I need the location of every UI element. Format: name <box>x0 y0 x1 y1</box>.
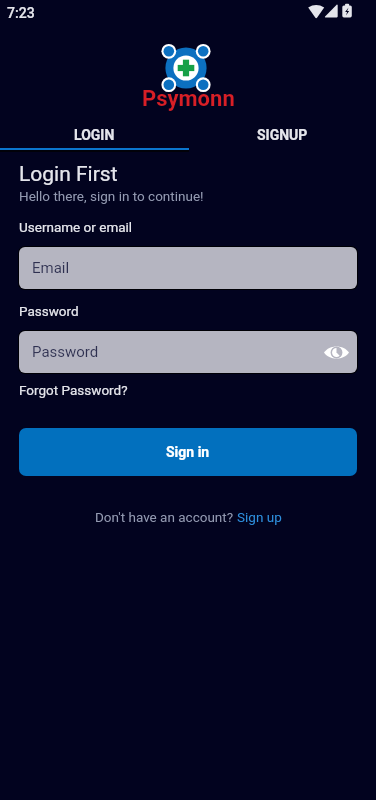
staticText: SIGNUP <box>257 127 308 143</box>
button[interactable]: Show password <box>323 339 349 365</box>
button[interactable]: SIGNUP <box>188 123 376 147</box>
button[interactable]: Sign in <box>19 428 357 476</box>
staticText: Email <box>32 259 70 277</box>
staticText: Password <box>19 303 79 319</box>
staticText: Hello there, sign in to continue! <box>19 188 204 204</box>
staticText: Sign in <box>166 444 210 460</box>
staticText: Password <box>32 343 99 361</box>
staticText: Forgot Password? <box>19 382 128 398</box>
staticText: Login First <box>19 162 118 187</box>
staticText: Don't have an account? <box>95 509 237 525</box>
staticText: Sign up <box>237 509 282 525</box>
button[interactable]: Password <box>19 331 357 373</box>
staticText: Username or email <box>19 219 133 235</box>
staticText: LOGIN <box>74 127 115 143</box>
button[interactable]: Forgot Password? <box>19 382 128 398</box>
button[interactable]: Sign up <box>237 509 282 525</box>
button[interactable]: LOGIN <box>0 123 188 147</box>
button[interactable]: Email <box>19 247 357 289</box>
staticText: 7:23 <box>7 5 35 21</box>
staticText: Psymonn <box>142 86 235 112</box>
other: Psymonn logo <box>161 43 211 93</box>
